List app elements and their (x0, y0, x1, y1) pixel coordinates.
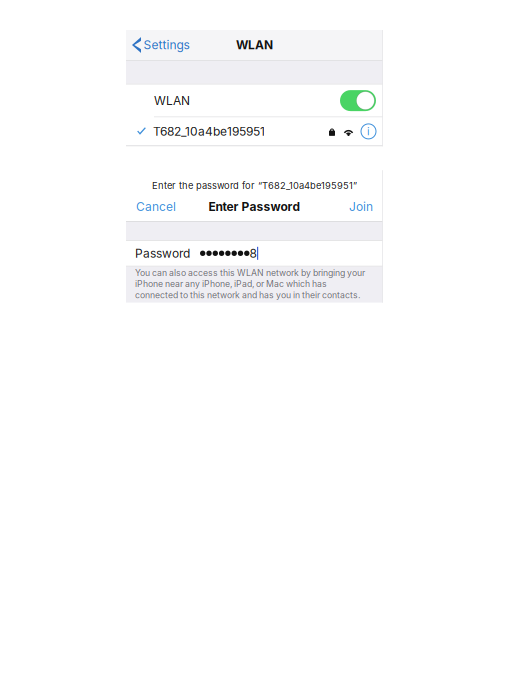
staticText: T682_10a4be195951 (153, 124, 265, 139)
staticText: Join (349, 199, 373, 214)
staticText: Password (135, 246, 190, 260)
button[interactable]: Cancel (127, 192, 185, 221)
staticText: Enter the password for “T682_10a4be19595… (152, 180, 357, 191)
staticText: iPhone near any iPhone, iPad, or Mac whi… (135, 279, 327, 289)
staticText: i (367, 125, 370, 138)
staticText: 8 (249, 246, 256, 260)
staticText: Cancel (136, 199, 176, 214)
button[interactable]: T682_10a4be195951 (126, 117, 383, 145)
button[interactable]: Join (340, 192, 382, 221)
button[interactable]: Settings (126, 30, 195, 60)
staticText: connected to this network and has you in… (135, 290, 360, 300)
staticText: You can also access this WLAN network by… (135, 268, 365, 278)
staticText: Enter Password (208, 199, 300, 214)
staticText: Settings (143, 38, 189, 52)
staticText: WLAN (236, 38, 273, 52)
staticText: WLAN (154, 93, 190, 108)
